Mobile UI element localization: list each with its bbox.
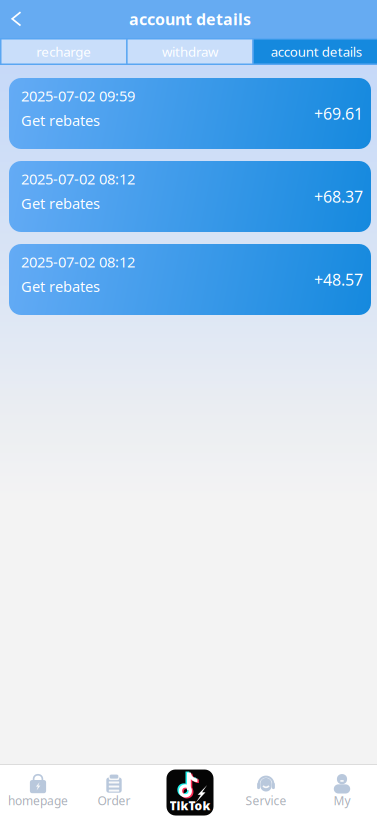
staticText: homepage [8, 792, 68, 808]
staticText: withdraw [162, 43, 218, 60]
staticText: +69.61 [314, 103, 363, 124]
button[interactable]: Service [228, 764, 304, 821]
staticText: account details [129, 8, 251, 30]
staticText: My [333, 792, 350, 808]
button[interactable]: 2025-07-02 09:59 [9, 78, 371, 149]
staticText: 2025-07-02 08:12 [21, 169, 135, 188]
staticText: recharge [36, 43, 91, 60]
button[interactable]: Order [76, 764, 152, 821]
button[interactable]: withdraw [128, 39, 252, 63]
staticText: 2025-07-02 08:12 [21, 252, 135, 271]
button[interactable]: 2025-07-02 08:12 [9, 161, 371, 232]
staticText: 2025-07-02 09:59 [21, 86, 135, 105]
staticText: +48.57 [314, 269, 363, 290]
button[interactable]: account details [254, 39, 378, 63]
button[interactable]: homepage [0, 764, 76, 821]
staticText: Order [97, 792, 130, 808]
button[interactable]: TikTok [152, 764, 228, 821]
staticText: TikTok [169, 797, 210, 813]
button[interactable]: recharge [1, 39, 126, 63]
button[interactable]: Back [0, 0, 33, 38]
button[interactable]: My [304, 764, 380, 821]
staticText: Service [245, 792, 286, 808]
staticText: Get rebates [21, 193, 100, 213]
staticText: Get rebates [21, 276, 100, 296]
staticText: Get rebates [21, 110, 100, 130]
staticText: account details [271, 43, 362, 60]
button[interactable]: 2025-07-02 08:12 [9, 244, 371, 315]
staticText: +68.37 [314, 186, 363, 207]
